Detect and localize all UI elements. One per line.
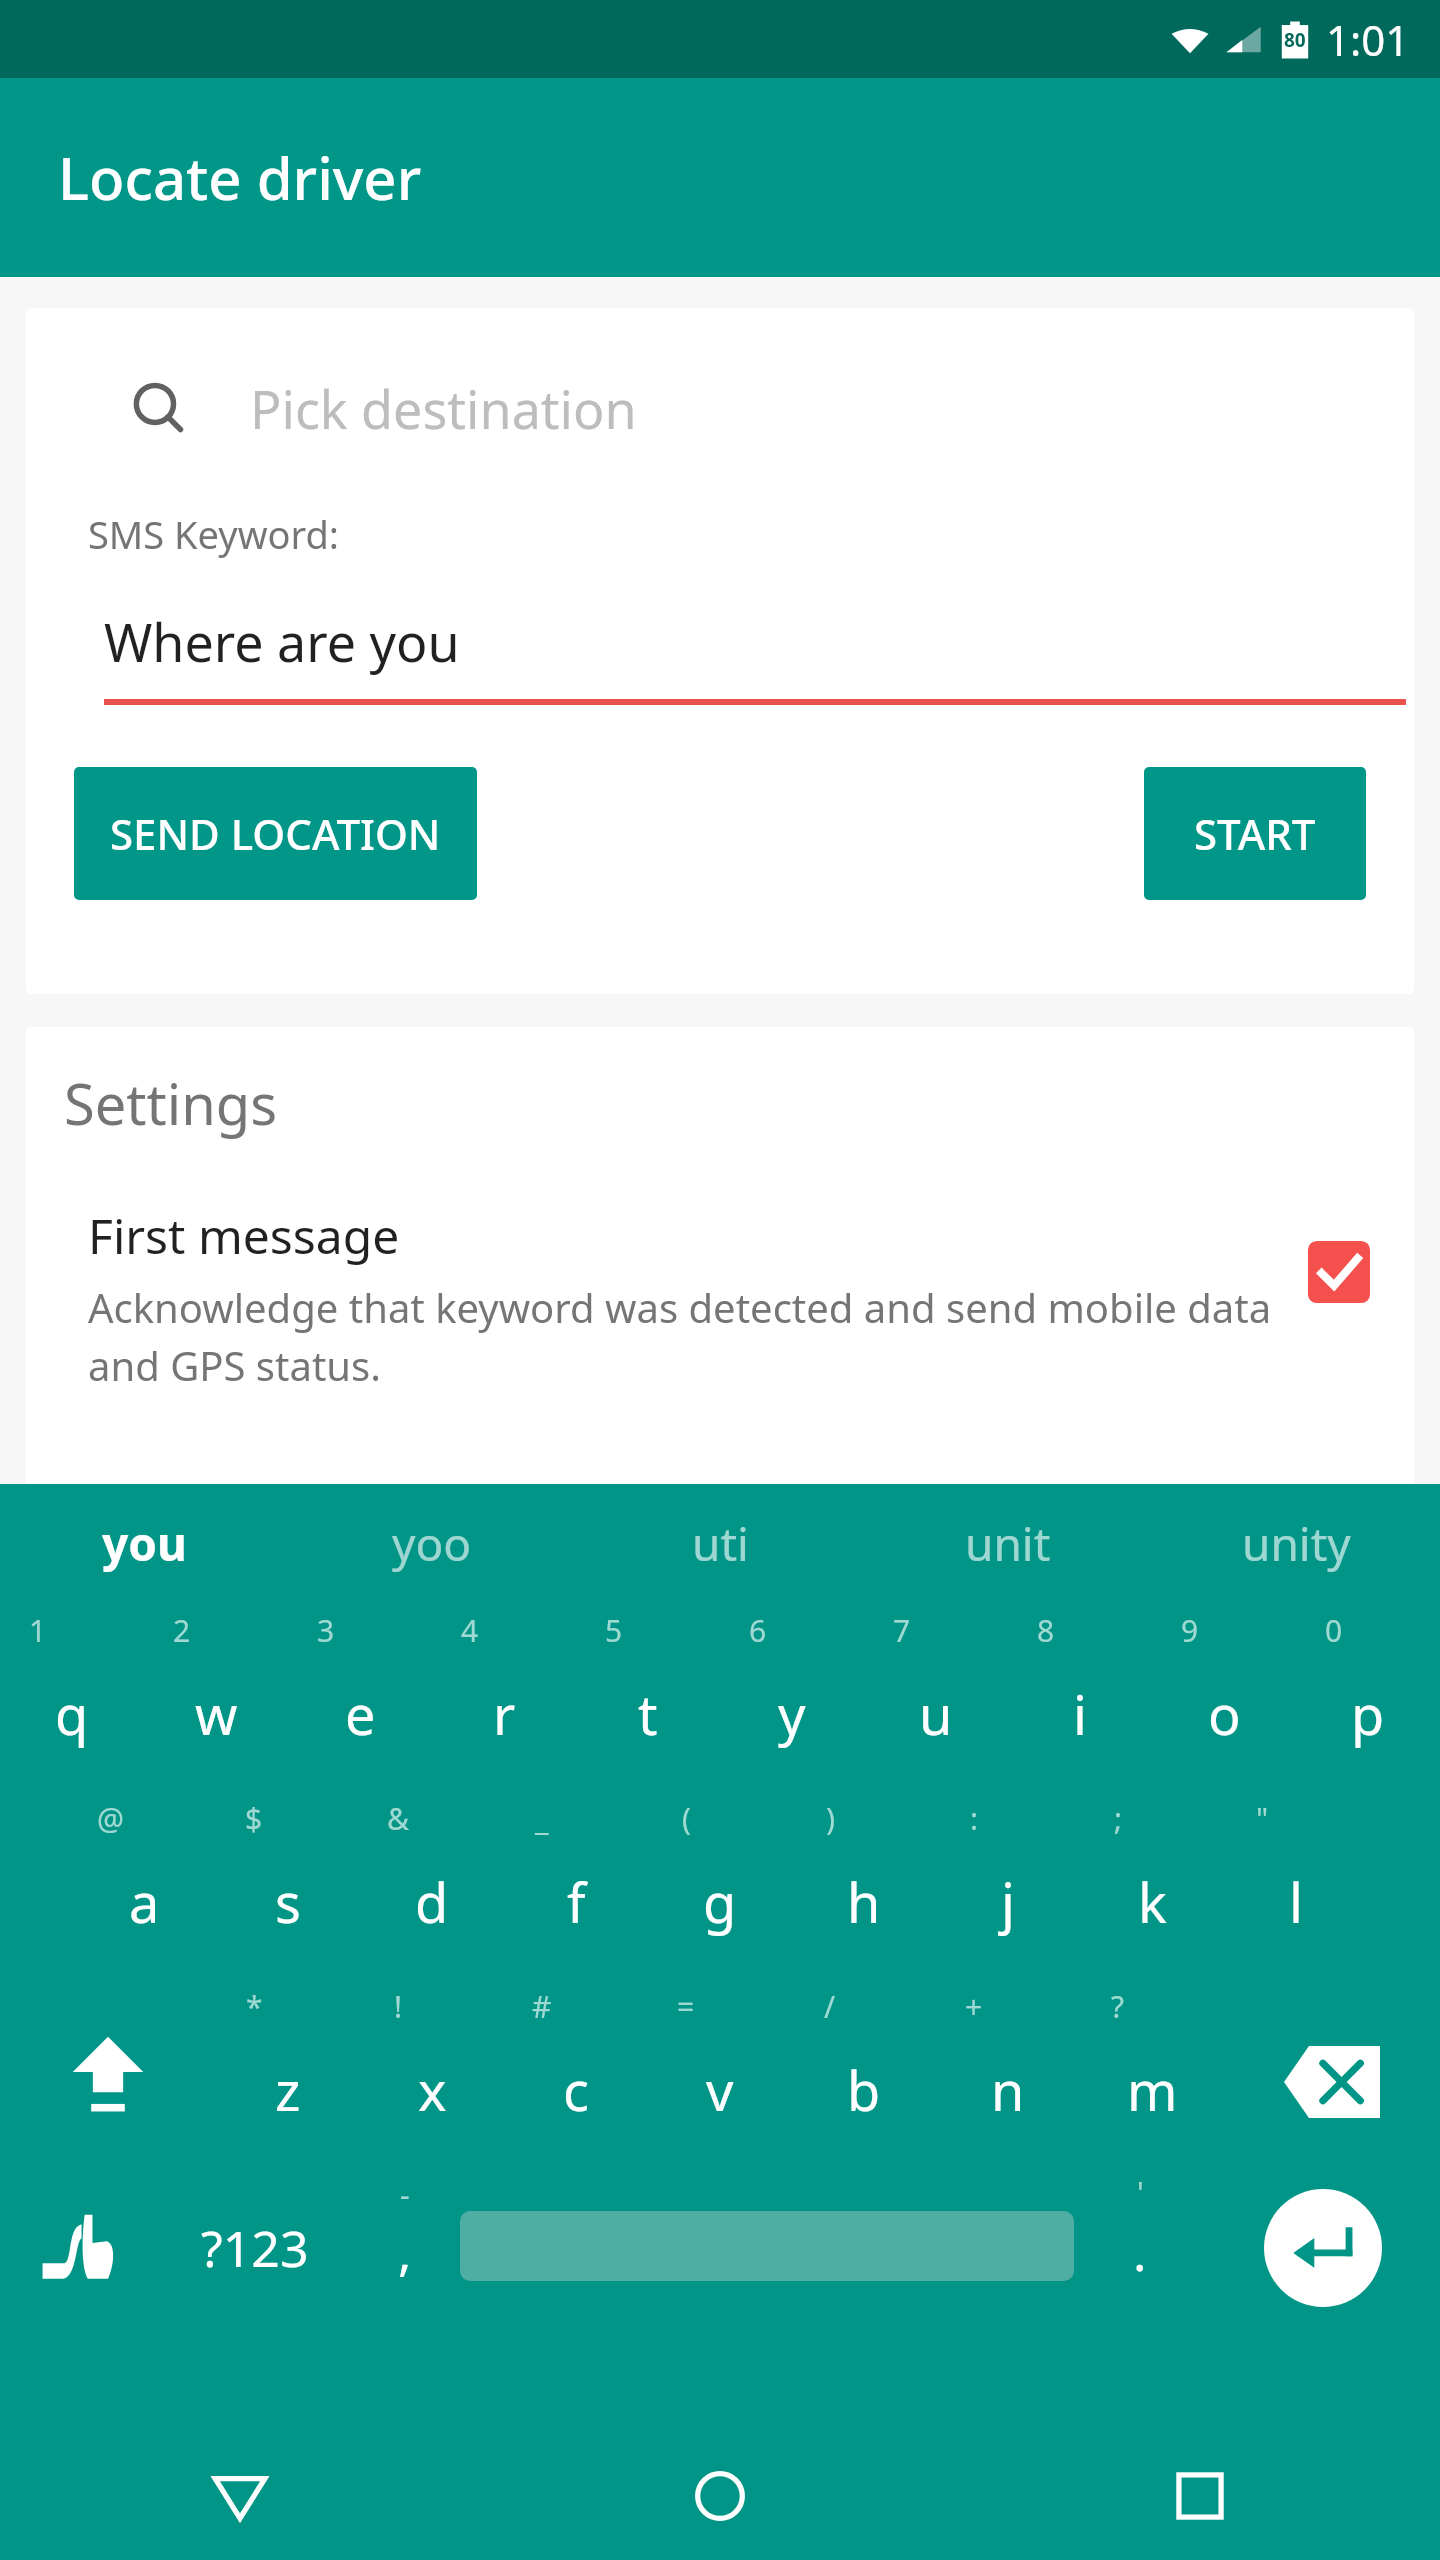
staticText: * [246,1986,263,2027]
button[interactable]: Enter [1206,2166,1440,2354]
staticText: Acknowledge that keyword was detected an… [88,1280,1280,1392]
button[interactable]: you [0,1484,288,1602]
staticText: ? [1111,1986,1125,2027]
staticText: h [847,1865,881,1939]
button[interactable]: 0 [1296,1602,1440,1790]
button[interactable]: " [1224,1790,1368,1978]
staticText: ; [1114,1798,1123,1839]
staticText: w [195,1677,238,1751]
button[interactable]: 3 [288,1602,432,1790]
staticText: c [563,2053,589,2127]
staticText: 1:01 [1326,11,1410,68]
button[interactable]: 1 [0,1602,144,1790]
button[interactable]: & [360,1790,504,1978]
staticText: q [55,1677,89,1751]
button[interactable]: Home [480,2432,960,2560]
button[interactable]: @ [72,1790,216,1978]
staticText: ) [826,1798,835,1839]
staticText: Pick destination [250,373,637,444]
staticText: l [1289,1865,1303,1939]
button[interactable]: uti [576,1484,864,1602]
button[interactable]: Backspace [1224,1978,1440,2166]
button[interactable]: ( [648,1790,792,1978]
button[interactable]: + [936,1978,1080,2166]
button[interactable]: unit [864,1484,1152,1602]
staticText: 80 [1284,27,1306,53]
staticText: n [991,2053,1025,2127]
staticText: e [345,1677,376,1751]
staticText: r [493,1677,516,1751]
button[interactable]: 6 [720,1602,864,1790]
staticText: 8 [1037,1610,1055,1651]
staticText: ! [394,1986,403,2027]
button[interactable]: Pick destination [26,308,1414,508]
button[interactable]: # [504,1978,648,2166]
staticText: = [677,1986,695,2027]
staticText: unity [1242,1512,1351,1575]
button[interactable]: 7 [864,1602,1008,1790]
button[interactable]: SEND LOCATION [74,767,477,900]
button[interactable]: START [1144,767,1366,900]
staticText: d [415,1865,449,1939]
button[interactable]: * [216,1978,360,2166]
button[interactable]: Handwriting input [0,2166,160,2354]
staticText: g [703,1865,737,1939]
staticText: . [1133,2218,1147,2286]
staticText: Where are you [104,606,460,677]
button[interactable]: unity [1152,1484,1440,1602]
button[interactable]: yoo [288,1484,576,1602]
staticText: f [567,1865,586,1939]
button[interactable]: _ [504,1790,648,1978]
staticText: & [387,1798,409,1839]
staticText: s [275,1865,301,1939]
staticText: yoo [392,1512,472,1575]
button[interactable]: First message [26,1203,1414,1392]
button[interactable]: Space [460,2166,1074,2354]
button[interactable]: ? [1080,1978,1224,2166]
button[interactable]: - [350,2166,460,2354]
staticText: 2 [173,1610,191,1651]
staticText: $ [245,1798,263,1839]
staticText: a [129,1865,160,1939]
button[interactable]: ; [1080,1790,1224,1978]
button[interactable]: ' [1074,2166,1206,2354]
staticText: First message [88,1203,400,1268]
staticText: SMS Keyword: [88,508,339,560]
staticText: ' [1137,2172,1144,2213]
staticText: uti [692,1512,749,1575]
staticText: Settings [64,1065,278,1141]
staticText: 0 [1325,1610,1343,1651]
staticText: 1 [29,1610,47,1651]
button[interactable]: Back [0,2432,480,2560]
button[interactable]: 2 [144,1602,288,1790]
button[interactable]: ! [360,1978,504,2166]
button[interactable]: 8 [1008,1602,1152,1790]
button[interactable]: $ [216,1790,360,1978]
button[interactable]: Shift [0,1978,216,2166]
staticText: 4 [461,1610,479,1651]
staticText: m [1127,2053,1178,2127]
staticText: ( [682,1798,691,1839]
staticText: t [638,1677,658,1751]
button[interactable]: 9 [1152,1602,1296,1790]
button[interactable]: : [936,1790,1080,1978]
button[interactable]: 5 [576,1602,720,1790]
button[interactable]: = [648,1978,792,2166]
staticText: / [824,1986,836,2027]
staticText: @ [97,1798,124,1839]
staticText: 6 [749,1610,767,1651]
staticText: j [1001,1865,1015,1939]
staticText: i [1073,1677,1087,1751]
staticText: x [418,2053,447,2127]
button[interactable]: ) [792,1790,936,1978]
staticText: 3 [317,1610,335,1651]
staticText: b [847,2053,881,2127]
button[interactable]: First message enabled [1308,1241,1370,1303]
button[interactable]: / [792,1978,936,2166]
button[interactable]: 4 [432,1602,576,1790]
staticText: - [400,2174,410,2215]
button[interactable]: ?123 [160,2166,350,2354]
staticText: " [1256,1798,1269,1839]
button[interactable]: Recent apps [960,2432,1440,2560]
staticText: 5 [605,1610,623,1651]
